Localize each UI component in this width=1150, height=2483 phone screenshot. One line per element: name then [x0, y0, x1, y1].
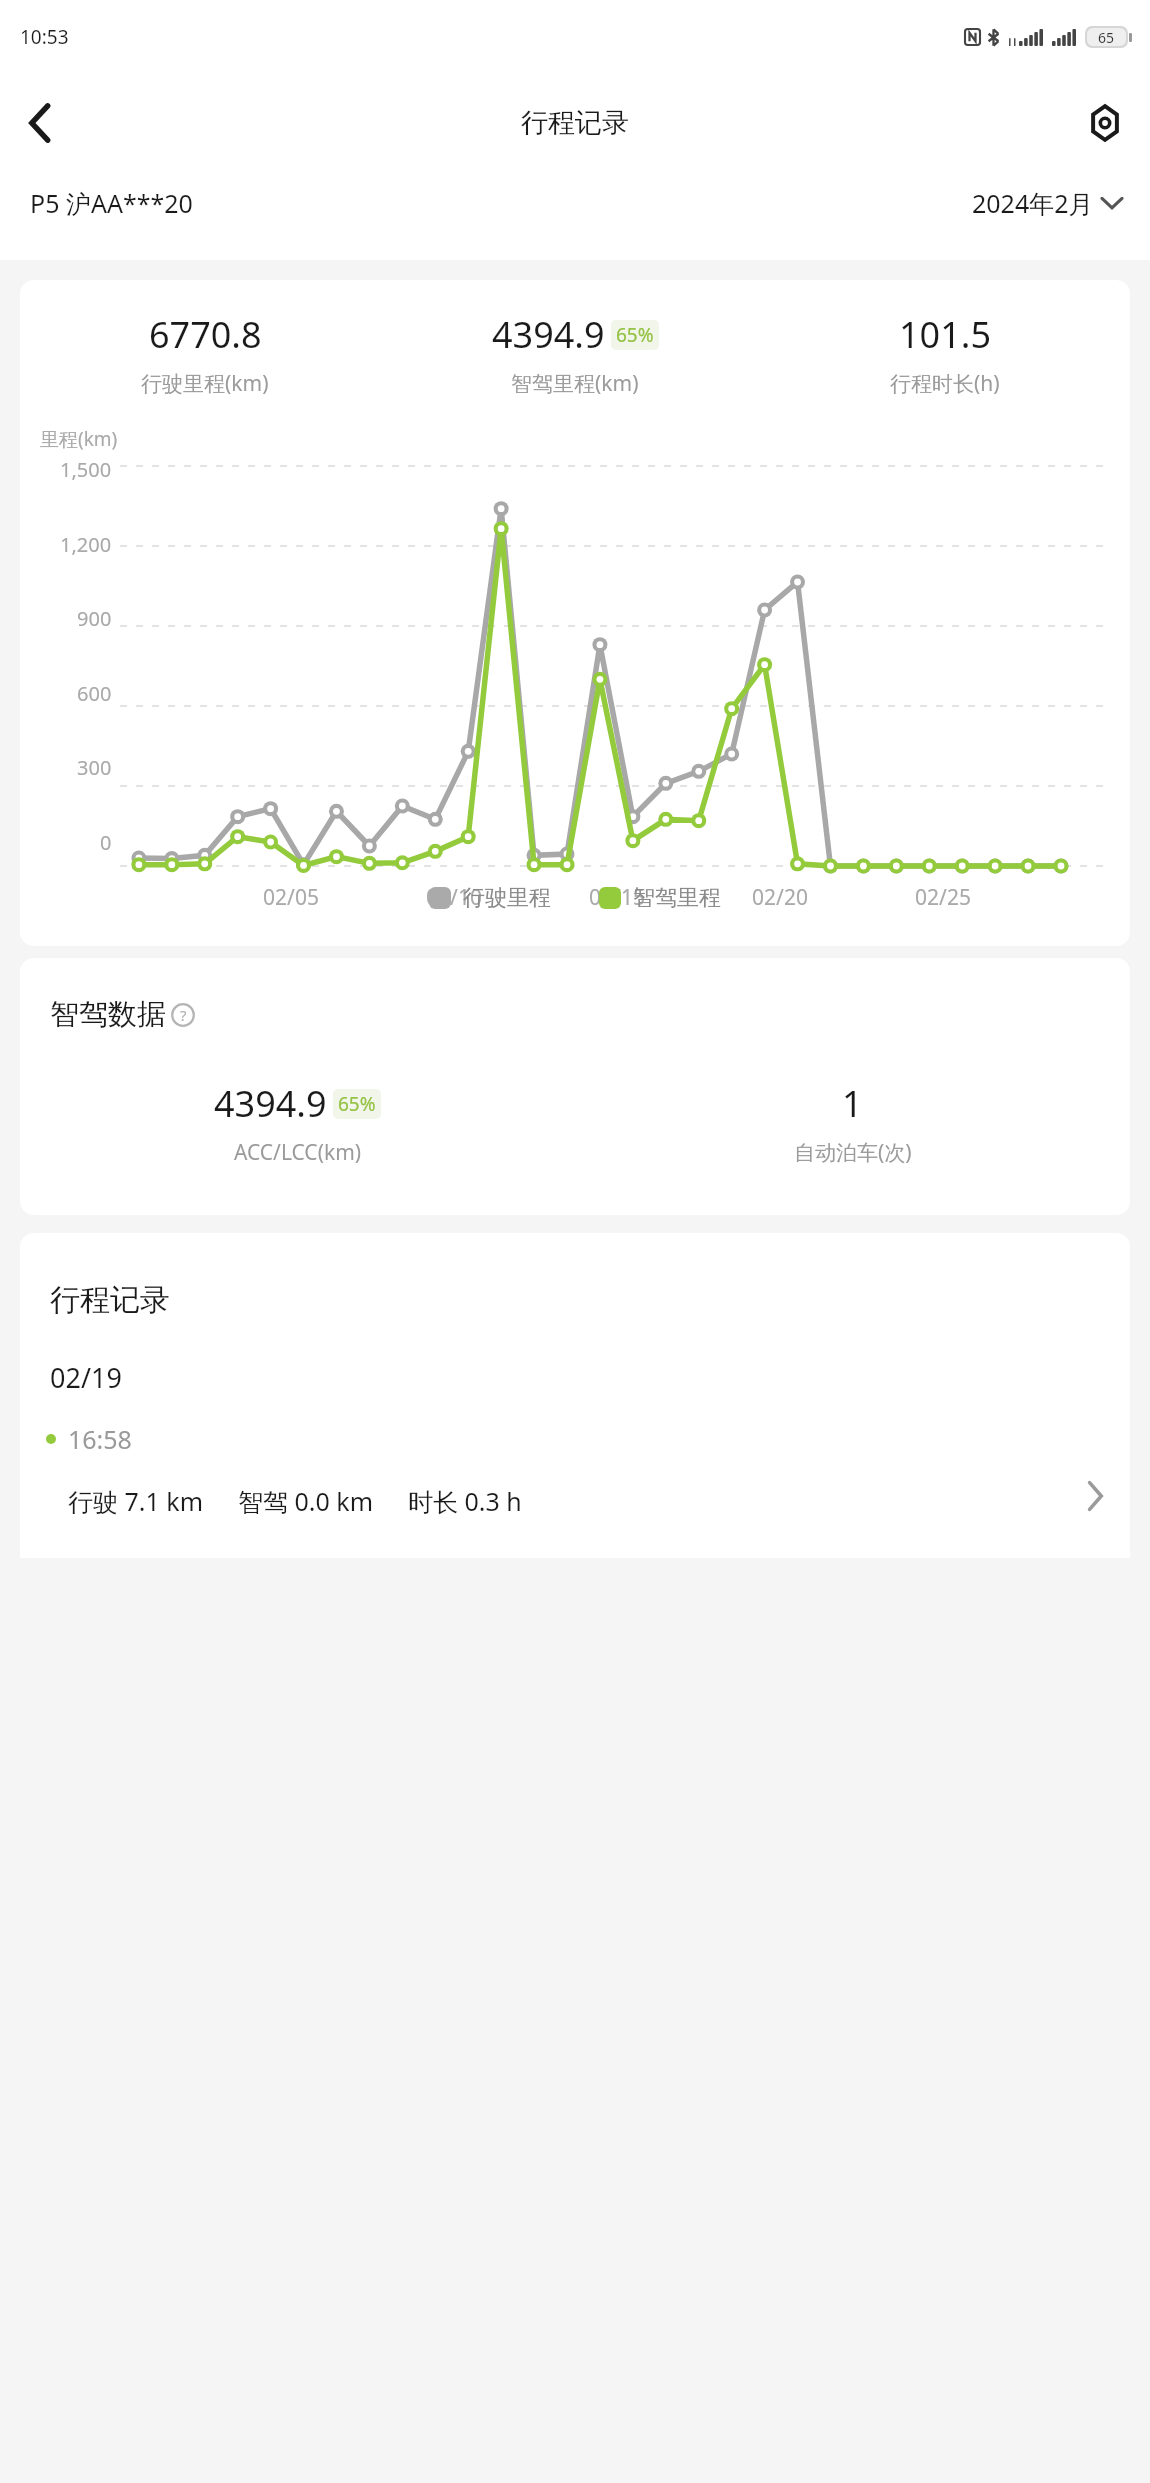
button[interactable]: Settings: [1074, 92, 1136, 154]
button[interactable]: 2024年2月: [972, 186, 1122, 220]
button[interactable]: 16:58: [20, 1422, 1130, 1518]
staticText: 1,200: [60, 531, 112, 558]
staticText: 智驾里程(km): [511, 369, 639, 398]
staticText: 65%: [616, 322, 654, 348]
staticText: 02/10: [386, 883, 522, 912]
staticText: 0: [100, 829, 112, 856]
staticText: 行程记录: [521, 106, 629, 140]
staticText: 自动泊车(次): [794, 1138, 912, 1167]
staticText: 65%: [338, 1091, 376, 1117]
staticText: 65: [1098, 28, 1115, 47]
staticText: 行驶 7.1 km: [68, 1484, 204, 1518]
staticText: 6770.8: [149, 310, 262, 359]
staticText: 智驾数据: [50, 996, 166, 1033]
button[interactable]: Back: [8, 91, 72, 155]
staticText: 行程记录: [50, 1281, 170, 1319]
staticText: 行程时长(h): [890, 369, 1000, 398]
button[interactable]: Help: [170, 1002, 196, 1028]
staticText: 10:53: [20, 24, 69, 50]
staticText: P5 沪AA***20: [30, 186, 193, 220]
staticText: 4394.9: [492, 310, 605, 359]
staticText: ACC/LCC(km): [234, 1138, 362, 1167]
staticText: 02/15: [549, 883, 685, 912]
staticText: 16:58: [68, 1422, 132, 1456]
staticText: 02/05: [223, 883, 359, 912]
staticText: 行驶里程: [463, 884, 551, 912]
staticText: 02/19: [50, 1359, 122, 1396]
staticText: 1,500: [60, 456, 112, 483]
staticText: 300: [77, 754, 112, 781]
staticText: 900: [77, 605, 112, 632]
staticText: 02/25: [875, 883, 1011, 912]
staticText: 4394.9: [214, 1079, 327, 1128]
staticText: 02/20: [712, 883, 848, 912]
staticText: 里程(km): [40, 426, 118, 452]
staticText: 2024年2月: [972, 186, 1094, 220]
staticText: 行驶里程(km): [141, 369, 269, 398]
staticText: 时长 0.3 h: [408, 1484, 522, 1518]
staticText: 1: [842, 1079, 863, 1128]
staticText: 101.5: [899, 310, 992, 359]
staticText: 智驾 0.0 km: [238, 1484, 374, 1518]
staticText: 600: [77, 680, 112, 707]
staticText: ?: [180, 1005, 187, 1025]
staticText: 智驾里程: [633, 884, 721, 912]
